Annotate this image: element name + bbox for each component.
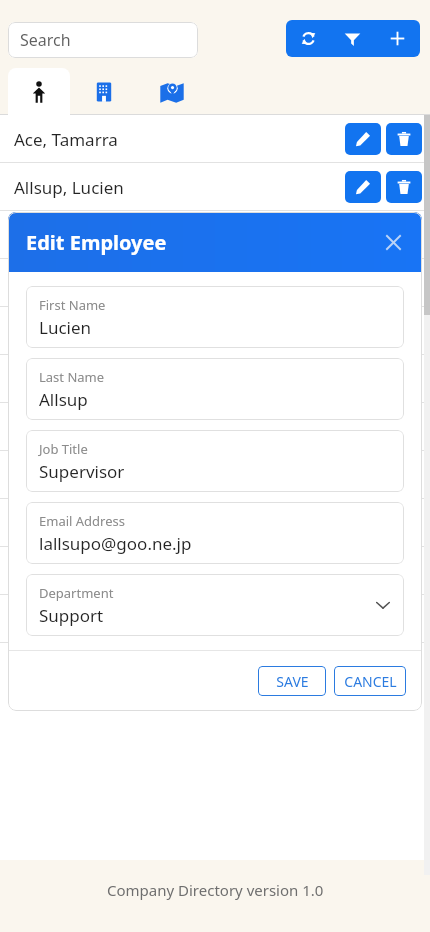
- staticText: Email Address: [39, 512, 125, 530]
- button[interactable]: Edit Calbaithe, Jon: [345, 555, 381, 587]
- button[interactable]: Banks, Harold: [0, 307, 430, 355]
- button[interactable]: Bentley, Mary: [0, 355, 430, 403]
- button[interactable]: CANCEL: [334, 666, 406, 696]
- button[interactable]: Delete Calbaithe, Jon: [386, 555, 422, 587]
- staticText: CANCEL: [344, 672, 397, 691]
- button[interactable]: Edit Allsup, Lucien: [345, 171, 381, 203]
- staticText: lallsupo@goo.ne.jp: [39, 532, 192, 555]
- staticText: Company Directory version 1.0: [107, 880, 324, 900]
- button[interactable]: Last Name: [26, 358, 404, 420]
- staticText: Amaker, Bob: [14, 224, 345, 247]
- button[interactable]: Delete Bailey, Grace: [386, 267, 422, 299]
- button[interactable]: Department: [26, 574, 404, 636]
- button[interactable]: Edit Carl, Leopold: [345, 603, 381, 635]
- staticText: Banks, Harold: [14, 320, 345, 343]
- staticText: Bailey, Grace: [14, 272, 345, 295]
- button[interactable]: SAVE: [258, 666, 326, 696]
- button[interactable]: Search: [8, 22, 198, 58]
- staticText: Bentley, Mary: [14, 368, 345, 391]
- button[interactable]: Edit Ace, Tamarra: [345, 123, 381, 155]
- button[interactable]: Delete Brown, Peter: [386, 459, 422, 491]
- button[interactable]: Edit Bailey, Grace: [345, 267, 381, 299]
- staticText: SAVE: [276, 672, 309, 691]
- button[interactable]: Job Title: [26, 430, 404, 492]
- staticText: Last Name: [39, 368, 105, 386]
- button[interactable]: Delete Ace, Tamarra: [386, 123, 422, 155]
- button[interactable]: Close: [376, 225, 410, 259]
- staticText: Calbaithe, Jon: [14, 560, 345, 583]
- staticText: Allsup, Lucien: [14, 176, 345, 199]
- staticText: Ace, Tamarra: [14, 128, 345, 151]
- button[interactable]: Delete Buss, Lanette: [386, 507, 422, 539]
- button[interactable]: Delete Brandt, Norma: [386, 411, 422, 443]
- button[interactable]: Carl, Leopold: [0, 595, 430, 643]
- button[interactable]: Companies: [70, 68, 138, 115]
- button[interactable]: Ace, Tamarra: [0, 115, 430, 163]
- button[interactable]: Brown, Peter: [0, 451, 430, 499]
- button[interactable]: Calbaithe, Jon: [0, 547, 430, 595]
- button[interactable]: Locations: [138, 68, 206, 115]
- staticText: Buss, Lanette: [14, 512, 345, 535]
- staticText: Allsup: [39, 388, 88, 411]
- button[interactable]: Delete Bentley, Mary: [386, 363, 422, 395]
- button[interactable]: Edit Brandt, Norma: [345, 411, 381, 443]
- staticText: Brown, Peter: [14, 464, 345, 487]
- button[interactable]: Refresh: [286, 20, 330, 57]
- button[interactable]: Delete Banks, Harold: [386, 315, 422, 347]
- button[interactable]: Allsup, Lucien: [0, 163, 430, 211]
- button[interactable]: First Name: [26, 286, 404, 348]
- staticText: Search: [20, 29, 71, 51]
- staticText: Edit Employee: [26, 229, 167, 256]
- staticText: Job Title: [39, 440, 88, 458]
- staticText: Carl, Leopold: [14, 608, 345, 631]
- button[interactable]: Delete Allsup, Lucien: [386, 171, 422, 203]
- staticText: Support: [39, 604, 104, 627]
- button[interactable]: Email Address: [26, 502, 404, 564]
- staticText: Brandt, Norma: [14, 416, 345, 439]
- staticText: Lucien: [39, 316, 92, 339]
- button[interactable]: Amaker, Bob: [0, 211, 430, 259]
- staticText: First Name: [39, 296, 106, 314]
- button[interactable]: Bailey, Grace: [0, 259, 430, 307]
- button[interactable]: Delete Amaker, Bob: [386, 219, 422, 251]
- staticText: Supervisor: [39, 460, 125, 483]
- button[interactable]: Buss, Lanette: [0, 499, 430, 547]
- button[interactable]: People: [8, 68, 70, 115]
- button[interactable]: Filter: [330, 20, 375, 57]
- button[interactable]: Delete Carl, Leopold: [386, 603, 422, 635]
- staticText: Department: [39, 584, 114, 602]
- button[interactable]: Add: [375, 20, 420, 57]
- button[interactable]: Brandt, Norma: [0, 403, 430, 451]
